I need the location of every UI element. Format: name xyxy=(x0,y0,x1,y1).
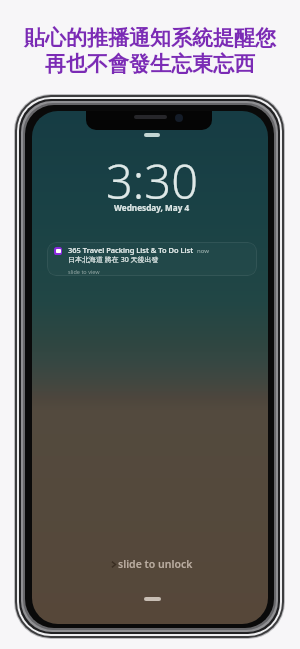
staticText: 貼心的推播通知系統提醒您 xyxy=(24,25,276,51)
staticText: 3:30 xyxy=(106,149,198,213)
staticText: slide to unlock xyxy=(118,557,193,571)
staticText: slide to view xyxy=(68,268,100,275)
staticText: Wednesday, May 4 xyxy=(114,202,190,213)
button[interactable]: 365 Travel Packing List & To Do List xyxy=(47,242,257,276)
staticText: 日本北海道 將在 30 天後出發 xyxy=(68,255,159,265)
button[interactable]: slide to unlock xyxy=(109,557,193,571)
staticText: 365 Travel Packing List & To Do List xyxy=(68,245,194,255)
staticText: 再也不會發生忘東忘西 xyxy=(45,51,255,77)
staticText: now xyxy=(197,247,209,255)
